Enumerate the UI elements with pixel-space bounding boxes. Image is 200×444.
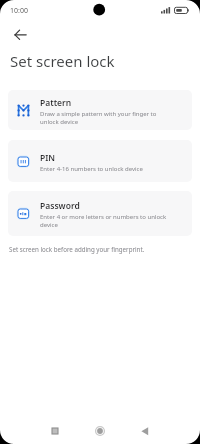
button[interactable] bbox=[14, 29, 27, 41]
staticText: Enter 4-16 numbers to unlock device bbox=[40, 165, 143, 173]
staticText: Pattern bbox=[40, 97, 72, 109]
staticText: 10:00 bbox=[10, 6, 28, 16]
button[interactable]: Pattern bbox=[8, 90, 192, 130]
button[interactable] bbox=[92, 423, 108, 439]
button[interactable] bbox=[137, 423, 153, 439]
staticText: PIN bbox=[40, 152, 56, 164]
button[interactable]: Password bbox=[8, 191, 192, 236]
staticText: Set screen lock before adding your finge… bbox=[9, 245, 145, 253]
button[interactable] bbox=[47, 423, 63, 439]
staticText: Draw a simple pattern with your finger t… bbox=[40, 110, 157, 126]
staticText: Password bbox=[40, 200, 80, 212]
button[interactable]: PIN bbox=[8, 140, 192, 182]
staticText: Enter 4 or more letters or numbers to un… bbox=[40, 213, 167, 229]
staticText: Set screen lock bbox=[10, 51, 115, 71]
